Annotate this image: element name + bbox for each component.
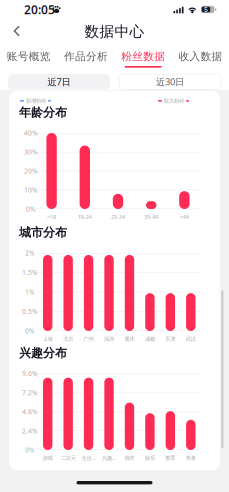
staticText: 账号概览 xyxy=(7,50,51,63)
staticText: 作品分析 xyxy=(64,50,108,63)
staticText: 20% xyxy=(24,167,38,175)
button[interactable]: 收入数据 xyxy=(172,51,229,71)
button[interactable]: 近7日 xyxy=(0,0,229,492)
staticText: 10% xyxy=(24,186,38,194)
staticText: 美食 xyxy=(186,455,196,461)
staticText: 1.5% xyxy=(22,268,38,277)
staticText: 生活… xyxy=(82,454,96,462)
staticText: 年龄分布 xyxy=(19,105,67,120)
staticText: 近30日 xyxy=(156,76,184,88)
staticText: 4.8% xyxy=(22,407,38,416)
staticText: 收入数据 xyxy=(178,50,222,63)
staticText: 教育 xyxy=(165,455,175,461)
button[interactable]: 返回 xyxy=(0,0,229,492)
staticText: 近7日 xyxy=(47,76,70,88)
staticText: 武汉 xyxy=(186,336,196,342)
staticText: 2.4% xyxy=(22,426,38,435)
staticText: 成都 xyxy=(145,336,155,342)
button[interactable]: 账号概览 xyxy=(0,51,57,71)
staticText: 7.2% xyxy=(22,388,38,397)
staticText: 重庆 xyxy=(124,336,134,342)
staticText: 新增粉丝 xyxy=(26,98,46,104)
staticText: >44 xyxy=(180,213,189,221)
staticText: 2% xyxy=(25,249,35,257)
staticText: 数据中心 xyxy=(84,22,144,40)
staticText: 0% xyxy=(25,327,35,335)
staticText: 取关粉丝 xyxy=(164,98,184,104)
staticText: 9.6% xyxy=(22,369,38,378)
staticText: 20:05 xyxy=(24,1,55,17)
staticText: 天津 xyxy=(165,336,175,342)
staticText: 搞笑 xyxy=(124,455,134,461)
staticText: 兴趣… xyxy=(102,454,116,462)
staticText: 上海 xyxy=(43,336,53,342)
staticText: 二次元 xyxy=(61,455,76,461)
staticText: 游戏 xyxy=(43,455,53,461)
staticText: 25-34 xyxy=(111,213,125,221)
button[interactable]: 粉丝数据 xyxy=(114,51,172,71)
staticText: 深圳 xyxy=(104,336,114,342)
staticText: 30% xyxy=(24,148,38,156)
staticText: 兴趣分布 xyxy=(19,346,67,360)
button[interactable]: 作品分析 xyxy=(57,51,114,71)
staticText: 5 xyxy=(204,5,208,14)
staticText: 0% xyxy=(26,205,36,213)
staticText: 1% xyxy=(25,288,35,296)
staticText: 娱乐 xyxy=(145,455,155,461)
staticText: 40% xyxy=(24,129,38,137)
staticText: 广州 xyxy=(84,336,94,342)
staticText: 北京 xyxy=(63,336,73,342)
staticText: 18-24 xyxy=(78,213,92,221)
staticText: <18 xyxy=(47,213,56,221)
staticText: 0% xyxy=(25,446,35,454)
staticText: 35-44 xyxy=(144,213,158,221)
button[interactable]: 近30日 xyxy=(0,0,229,492)
staticText: 0.5% xyxy=(22,307,38,316)
staticText: 城市分布 xyxy=(19,225,67,240)
staticText: 粉丝数据 xyxy=(121,50,165,63)
